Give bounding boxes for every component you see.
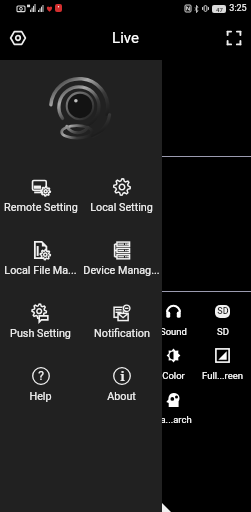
button[interactable]: Playback	[50, 336, 100, 380]
staticText: About	[107, 390, 136, 403]
staticText: Sound	[160, 326, 187, 336]
button[interactable]: PTZ	[0, 336, 50, 380]
staticText: Local File Ma...	[4, 264, 77, 277]
staticText: Remote Setting	[4, 201, 78, 214]
staticText: Alarm	[112, 370, 138, 380]
staticText: PTZ	[16, 370, 34, 380]
staticText: Full...reen	[202, 370, 243, 380]
staticText: Capture	[8, 326, 42, 336]
staticText: Local Setting	[90, 201, 153, 214]
button[interactable]: SD	[198, 292, 247, 336]
staticText: Color	[162, 370, 185, 380]
staticText: Live	[112, 29, 139, 47]
button[interactable]: Full...reen	[198, 336, 247, 380]
button[interactable]: Local Setting	[81, 165, 162, 228]
staticText: Notification	[94, 327, 150, 340]
button[interactable]: Device Manag...	[81, 228, 162, 291]
staticText: SD	[217, 326, 229, 336]
staticText: 3:25	[229, 3, 247, 14]
staticText: Talk	[116, 326, 134, 336]
staticText: Device Manag...	[83, 264, 160, 277]
button[interactable]: Fa...arch	[149, 380, 198, 424]
button[interactable]: i	[81, 354, 162, 417]
button[interactable]: Sound	[149, 292, 198, 336]
button[interactable]: Menu	[4, 24, 32, 52]
staticText: i	[120, 368, 125, 384]
staticText: Help	[29, 390, 52, 403]
staticText: SD	[217, 306, 229, 317]
staticText: Fa...arch	[155, 414, 192, 424]
button[interactable]: Local File Ma...	[0, 228, 81, 291]
staticText: Push Setting	[10, 327, 71, 340]
button[interactable]: Device	[0, 380, 50, 424]
button[interactable]: Record	[50, 292, 100, 336]
staticText: ?	[38, 369, 44, 383]
button[interactable]: Color	[149, 336, 198, 380]
staticText: Record	[60, 326, 90, 336]
button[interactable]: Capture	[0, 292, 50, 336]
button[interactable]: Remote Setting	[0, 165, 81, 228]
button[interactable]: Image	[100, 380, 149, 424]
staticText: 47	[216, 6, 223, 13]
button[interactable]: ?	[0, 354, 81, 417]
button[interactable]: Talk	[100, 292, 149, 336]
button[interactable]: Alarm	[100, 336, 149, 380]
button[interactable]: Notification	[81, 291, 162, 354]
button[interactable]: Push Setting	[0, 291, 81, 354]
button[interactable]: Fullscreen	[220, 24, 248, 52]
button[interactable]: Favorite	[50, 380, 100, 424]
